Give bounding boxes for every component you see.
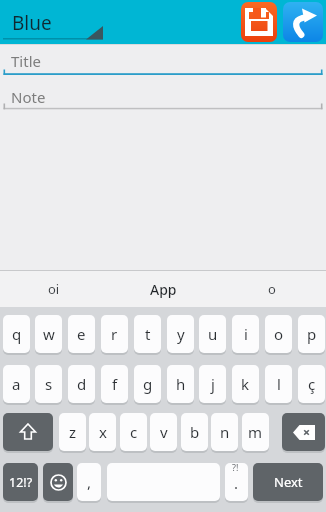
staticText: o xyxy=(268,280,276,298)
button[interactable]: w xyxy=(35,315,62,353)
staticText: y xyxy=(177,324,185,344)
button[interactable]: l xyxy=(265,365,292,403)
staticText: x xyxy=(99,422,107,442)
button[interactable]: App xyxy=(108,271,218,307)
button[interactable]: Next xyxy=(253,463,323,501)
button[interactable]: p xyxy=(298,315,325,353)
button[interactable]: y xyxy=(167,315,194,353)
staticText: t xyxy=(145,324,151,344)
button[interactable]: j xyxy=(199,365,226,403)
staticText: ?! xyxy=(232,461,239,473)
button[interactable]: Blue xyxy=(0,0,110,44)
button[interactable]: u xyxy=(199,315,226,353)
button[interactable]: 12!? xyxy=(3,463,38,501)
staticText: Blue xyxy=(12,10,52,36)
staticText: ç xyxy=(308,374,316,394)
staticText: Title xyxy=(11,51,41,71)
staticText: q xyxy=(12,324,22,344)
button[interactable]: o xyxy=(218,271,326,307)
button[interactable]: Title xyxy=(3,45,323,75)
button[interactable] xyxy=(282,413,325,451)
staticText: c xyxy=(130,422,138,442)
button[interactable]: b xyxy=(181,413,208,451)
staticText: u xyxy=(208,324,218,344)
button[interactable]: a xyxy=(3,365,30,403)
button[interactable] xyxy=(3,413,53,451)
button[interactable]: oi xyxy=(0,271,108,307)
button[interactable]: v xyxy=(150,413,177,451)
staticText: o xyxy=(274,324,284,344)
staticText: , xyxy=(87,472,92,492)
staticText: App xyxy=(150,280,177,299)
staticText: e xyxy=(77,324,86,344)
staticText: 12!? xyxy=(9,474,33,491)
staticText: f xyxy=(112,374,118,394)
button[interactable]: h xyxy=(167,365,194,403)
button[interactable] xyxy=(241,2,277,42)
button[interactable]: i xyxy=(232,315,259,353)
button[interactable]: r xyxy=(101,315,128,353)
button[interactable] xyxy=(225,463,248,501)
staticText: Note xyxy=(11,87,46,107)
staticText: r xyxy=(111,324,118,344)
button[interactable]: , xyxy=(77,463,101,501)
button[interactable]: d xyxy=(68,365,95,403)
button[interactable]: e xyxy=(68,315,95,353)
staticText: j xyxy=(211,374,215,394)
staticText: p xyxy=(307,324,317,344)
staticText: a xyxy=(12,374,21,394)
button[interactable]: n xyxy=(211,413,238,451)
staticText: h xyxy=(176,374,186,394)
button[interactable]: m xyxy=(242,413,269,451)
button[interactable]: ç xyxy=(298,365,325,403)
staticText: n xyxy=(220,422,230,442)
staticText: l xyxy=(277,374,281,394)
button[interactable]: x xyxy=(89,413,116,451)
staticText: oi xyxy=(48,280,60,298)
staticText: z xyxy=(69,422,77,442)
staticText: d xyxy=(77,374,87,394)
staticText: v xyxy=(160,422,168,442)
button[interactable]: z xyxy=(59,413,86,451)
staticText: b xyxy=(190,422,200,442)
staticText: k xyxy=(241,374,250,394)
staticText: w xyxy=(43,324,55,344)
button[interactable]: f xyxy=(101,365,128,403)
staticText: Next xyxy=(274,473,303,491)
button[interactable]: s xyxy=(35,365,62,403)
button[interactable]: c xyxy=(120,413,147,451)
button[interactable]: q xyxy=(3,315,30,353)
staticText: g xyxy=(143,374,153,394)
button[interactable]: Note xyxy=(3,80,323,110)
button[interactable] xyxy=(43,463,73,501)
staticText: s xyxy=(45,374,53,394)
button[interactable]: g xyxy=(134,365,161,403)
button[interactable]: o xyxy=(265,315,292,353)
staticText: m xyxy=(248,422,263,442)
button[interactable] xyxy=(107,463,220,501)
staticText: . xyxy=(234,473,239,493)
button[interactable]: t xyxy=(134,315,161,353)
button[interactable] xyxy=(283,2,323,42)
staticText: i xyxy=(244,324,248,344)
button[interactable]: k xyxy=(232,365,259,403)
